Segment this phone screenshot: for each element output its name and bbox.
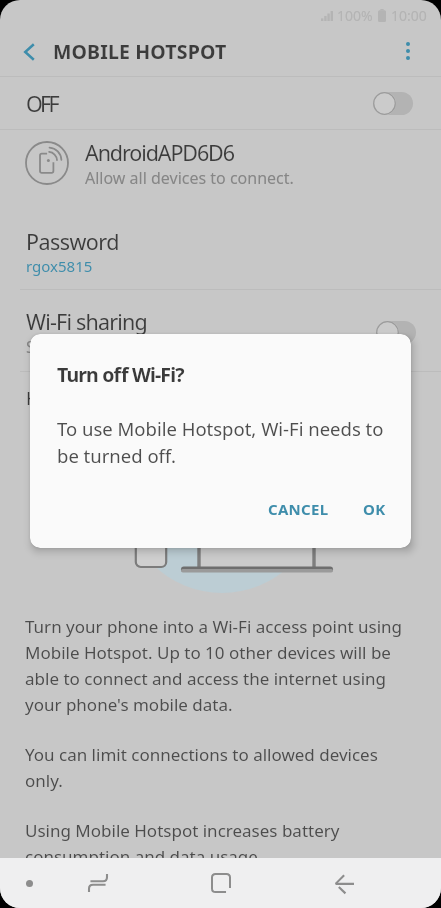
staticText: CANCEL bbox=[268, 499, 329, 519]
button[interactable]: Wi-Fi sharing bbox=[0, 294, 441, 370]
staticText: MOBILE HOTSPOT bbox=[53, 38, 227, 65]
staticText: AndroidAPD6D6 bbox=[85, 138, 234, 167]
staticText: 10:00 bbox=[391, 6, 427, 25]
button[interactable]: Password bbox=[0, 211, 441, 291]
staticText: You can limit connections to allowed dev… bbox=[25, 743, 414, 792]
staticText: How to use Mobile Hotspot bbox=[26, 386, 256, 411]
button[interactable]: Back bbox=[316, 858, 372, 908]
staticText: Using Mobile Hotspot increases battery c… bbox=[25, 819, 414, 868]
button[interactable]: Show keyboard bbox=[5, 858, 53, 908]
staticText: OK bbox=[363, 499, 386, 519]
staticText: Wi-Fi sharing bbox=[26, 307, 147, 336]
button[interactable]: How to use Mobile Hotspot bbox=[0, 372, 441, 424]
staticText: rgox5815 bbox=[26, 256, 93, 276]
button[interactable]: AndroidAPD6D6 bbox=[0, 127, 441, 199]
staticText: 100% bbox=[337, 6, 373, 25]
button[interactable]: More options bbox=[395, 28, 441, 74]
button[interactable]: OK bbox=[349, 489, 400, 529]
staticText: OFF bbox=[26, 89, 58, 118]
staticText: To use Mobile Hotspot, Wi-Fi needs to be… bbox=[57, 416, 385, 469]
button[interactable]: CANCEL bbox=[254, 489, 343, 529]
button[interactable]: Home bbox=[193, 858, 249, 908]
button[interactable]: OFF bbox=[0, 77, 441, 129]
button[interactable]: Recents bbox=[69, 858, 126, 908]
button[interactable]: Navigate up bbox=[0, 28, 46, 74]
staticText: Share your Wi-Fi connection. bbox=[26, 336, 240, 358]
staticText: Turn off Wi-Fi? bbox=[57, 361, 184, 388]
staticText: Turn your phone into a Wi-Fi access poin… bbox=[25, 615, 414, 716]
staticText: Allow all devices to connect. bbox=[85, 167, 294, 189]
staticText: Password bbox=[26, 227, 119, 256]
